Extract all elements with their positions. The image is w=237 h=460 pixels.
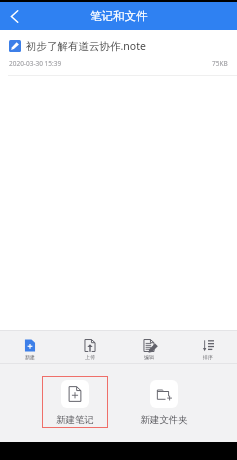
button[interactable]: Back [0, 2, 28, 30]
button[interactable]: 新建文件夹 [131, 364, 197, 426]
staticText: 75KB [212, 59, 228, 68]
staticText: 新建笔记 [56, 414, 94, 426]
button[interactable]: 初步了解有道云协作.note [0, 39, 237, 53]
staticText: 新建 [25, 354, 35, 360]
staticText: 新建文件夹 [140, 414, 188, 426]
button[interactable]: 新建 [0, 334, 60, 360]
staticText: 2020-03-30 15:39 [9, 59, 62, 68]
staticText: 初步了解有道云协作.note [26, 39, 146, 53]
button[interactable]: 新建笔记 [42, 364, 108, 426]
staticText: 排序 [203, 354, 213, 360]
staticText: 上传 [85, 354, 95, 360]
staticText: 笔记和文件 [90, 9, 148, 23]
button[interactable]: 编辑 [119, 334, 178, 360]
button[interactable]: 上传 [60, 334, 119, 360]
staticText: 编辑 [144, 354, 154, 360]
button[interactable]: 排序 [178, 334, 237, 360]
